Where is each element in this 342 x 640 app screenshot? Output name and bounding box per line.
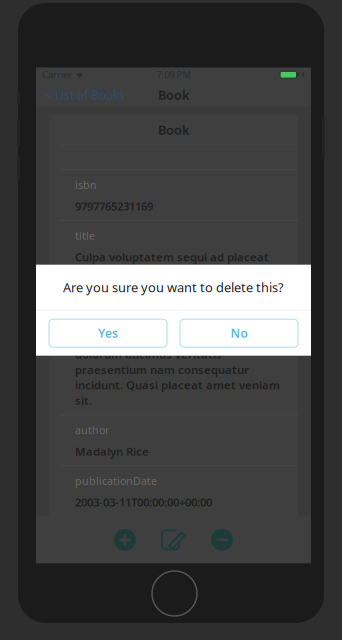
staticText: isbn [75, 178, 97, 192]
staticText: No [230, 325, 247, 341]
staticText: description [75, 279, 132, 294]
staticText: title [75, 228, 95, 243]
staticText: 7:09 PM [156, 68, 190, 81]
button[interactable]: < List of Books [36, 81, 134, 109]
staticText: Are you sure you want to delete this? [63, 278, 284, 296]
staticText: 2003-03-11T00:00:00+00:00 [75, 494, 212, 510]
staticText: Book [158, 121, 189, 139]
button[interactable]: Delete [211, 523, 233, 557]
button[interactable]: Yes [49, 319, 167, 347]
staticText: Culpa voluptatem sequi ad placeat [75, 249, 269, 265]
button[interactable]: No [180, 319, 298, 347]
staticText: publicationDate [75, 474, 157, 488]
staticText: author [75, 423, 109, 437]
staticText: 9797765231169 [75, 198, 153, 214]
staticText: Madalyn Rice [75, 443, 149, 459]
staticText: Sunt quia voluptatem ut quia quia enim. … [75, 300, 280, 408]
button[interactable]: Add [114, 523, 136, 557]
staticText: < List of Books [45, 87, 125, 103]
staticText: Carrier [42, 68, 72, 81]
staticText: Yes [98, 325, 118, 341]
staticText: Book [158, 86, 189, 104]
button[interactable]: Edit [162, 523, 185, 557]
